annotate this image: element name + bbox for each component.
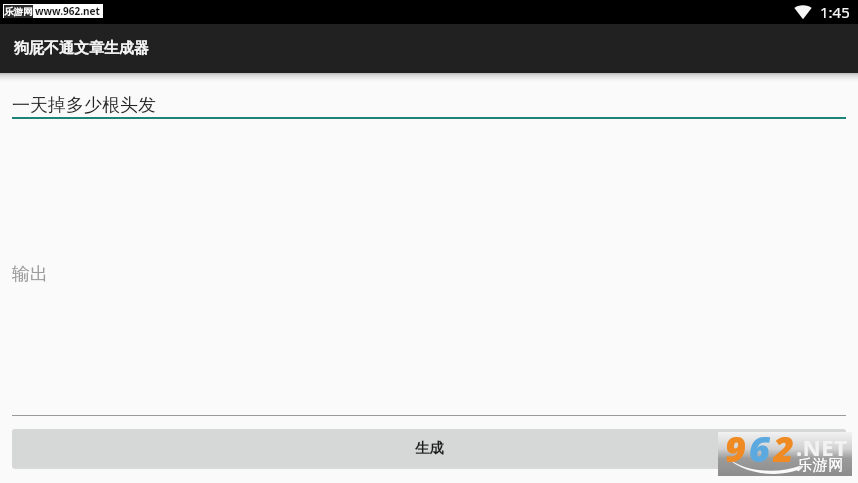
button[interactable]: 一天掉多少根头发 — [12, 73, 846, 117]
other: Wi-Fi signal — [794, 5, 812, 19]
button[interactable]: 生成 — [12, 429, 846, 467]
staticText: 狗屁不通文章生成器 — [14, 39, 149, 58]
staticText: www.962.net — [35, 4, 100, 18]
staticText: 9 — [725, 424, 749, 468]
staticText: 乐游网 — [4, 6, 33, 18]
staticText: 乐游网 — [797, 456, 845, 475]
staticText: .NET — [796, 432, 848, 462]
staticText: 2 — [773, 424, 797, 468]
button[interactable]: 狗屁不通文章生成器 — [0, 24, 858, 73]
staticText: 一天掉多少根头发 — [12, 94, 156, 117]
staticText: 输出 — [12, 263, 48, 286]
staticText: 1:45 — [820, 2, 850, 22]
staticText: 生成 — [415, 439, 444, 457]
staticText: 6 — [749, 424, 773, 468]
